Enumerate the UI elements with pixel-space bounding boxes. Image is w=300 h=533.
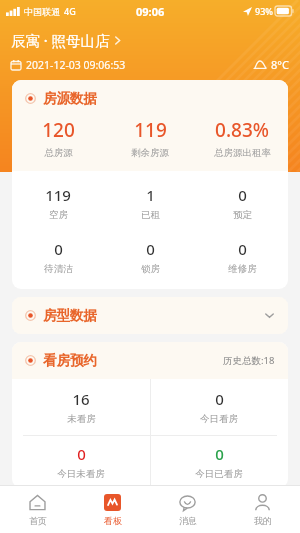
staticText: 看板 xyxy=(104,515,122,526)
button[interactable]: 0.83% xyxy=(196,117,288,159)
staticText: 0 xyxy=(146,239,155,259)
button[interactable]: 0 xyxy=(104,239,196,275)
staticText: 今日已看房 xyxy=(195,468,243,480)
staticText: 1 xyxy=(146,185,155,205)
staticText: 16 xyxy=(72,389,90,409)
staticText: 0 xyxy=(238,239,247,259)
staticText: 0 xyxy=(77,444,86,464)
staticText: 首页 xyxy=(29,515,47,526)
button[interactable]: 1 xyxy=(104,185,196,221)
staticText: 维修房 xyxy=(228,263,257,275)
button[interactable]: 0 xyxy=(150,379,288,435)
button[interactable]: 0 xyxy=(12,239,104,275)
button[interactable]: 0 xyxy=(196,185,288,221)
staticText: 房源数据 xyxy=(43,90,97,107)
other: 我的 xyxy=(254,494,271,511)
staticText: 0 xyxy=(215,444,224,464)
button[interactable]: 0 xyxy=(12,436,150,488)
staticText: 2021-12-03 09:06:53 xyxy=(26,58,126,72)
staticText: 辰寓 · 照母山店 xyxy=(11,30,110,50)
staticText: 锁房 xyxy=(141,263,160,275)
staticText: 总房源出租率 xyxy=(214,147,271,159)
staticText: 预定 xyxy=(233,209,252,221)
staticText: 已租 xyxy=(141,209,160,221)
staticText: 119 xyxy=(134,117,167,143)
button[interactable]: 辰寓 · 照母山店 xyxy=(11,30,121,50)
staticText: 待清洁 xyxy=(44,263,73,275)
other: 消息 xyxy=(179,494,196,511)
staticText: 0.83% xyxy=(215,117,269,143)
staticText: 0 xyxy=(238,185,247,205)
staticText: 消息 xyxy=(179,515,197,526)
other: 首页 xyxy=(29,494,46,511)
button[interactable]: 16 xyxy=(12,379,150,435)
button[interactable]: 房型数据 xyxy=(12,297,288,334)
other: 展开房型数据 xyxy=(264,310,275,321)
button[interactable]: 我的 xyxy=(225,486,300,533)
staticText: 看房预约 xyxy=(43,352,97,369)
staticText: 8°C xyxy=(271,57,289,72)
button[interactable]: 0 xyxy=(150,436,288,488)
button[interactable]: 看板 xyxy=(75,486,150,533)
button[interactable]: 首页 xyxy=(0,486,75,533)
button[interactable]: 119 xyxy=(12,185,104,221)
staticText: 剩余房源 xyxy=(131,147,169,159)
staticText: 119 xyxy=(45,185,71,205)
staticText: 今日看房 xyxy=(200,413,238,425)
staticText: 0 xyxy=(54,239,63,259)
other: 看板 xyxy=(104,494,121,511)
staticText: 中国联通 xyxy=(24,6,60,17)
staticText: 120 xyxy=(42,117,75,143)
button[interactable]: 消息 xyxy=(150,486,225,533)
staticText: 今日未看房 xyxy=(57,468,105,480)
staticText: 我的 xyxy=(254,515,272,526)
staticText: 总房源 xyxy=(44,147,73,159)
staticText: 历史总数:18 xyxy=(223,354,275,367)
staticText: 未看房 xyxy=(67,413,96,425)
staticText: 09:06 xyxy=(136,4,165,19)
staticText: 0 xyxy=(215,389,224,409)
button[interactable]: 0 xyxy=(196,239,288,275)
button[interactable]: 120 xyxy=(12,117,104,159)
staticText: 93% xyxy=(255,5,273,17)
staticText: 房型数据 xyxy=(43,307,97,324)
staticText: 4G xyxy=(64,5,76,17)
button[interactable]: 119 xyxy=(104,117,196,159)
staticText: 空房 xyxy=(49,209,68,221)
